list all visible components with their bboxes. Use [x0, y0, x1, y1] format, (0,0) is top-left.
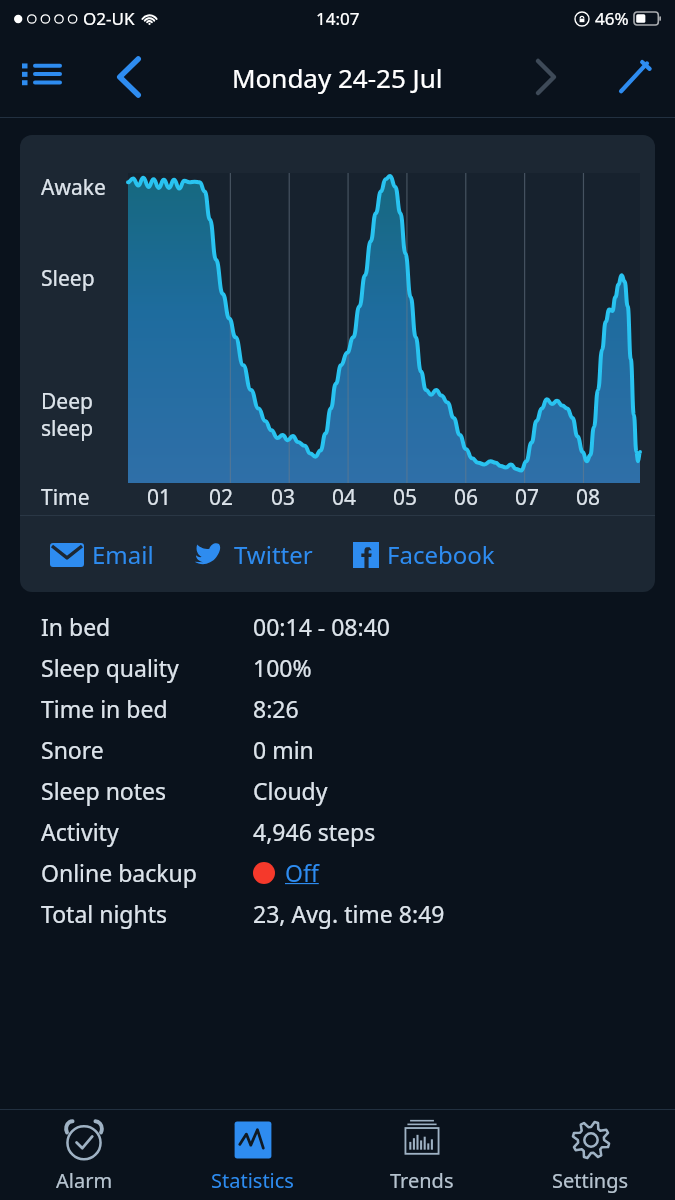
staticText: In bed	[41, 611, 253, 642]
staticText: Trends	[390, 1167, 454, 1194]
button[interactable]: Settings	[506, 1110, 675, 1200]
staticText: Sleep quality	[41, 652, 253, 683]
button[interactable]: Sleep quality	[41, 647, 675, 688]
button[interactable]: List	[8, 44, 74, 110]
staticText: Cloudy	[253, 775, 328, 806]
staticText: Awake	[41, 173, 106, 202]
staticText: 00:14 - 08:40	[253, 611, 390, 642]
staticText: 0 min	[253, 734, 314, 765]
staticText: Twitter	[234, 538, 313, 571]
staticText: 8:26	[253, 693, 299, 724]
button[interactable]: Trends	[337, 1110, 506, 1200]
staticText: Snore	[41, 734, 253, 765]
staticText: 4,946 steps	[253, 816, 376, 847]
staticText: Online backup	[41, 857, 253, 888]
staticText: 07	[515, 483, 540, 512]
staticText: O2-UK	[83, 7, 135, 30]
staticText: Email	[92, 538, 154, 571]
button[interactable]: Statistics	[168, 1110, 337, 1200]
staticText: Activity	[41, 816, 253, 847]
staticText: 06	[454, 483, 479, 512]
staticText: Time	[41, 483, 90, 512]
staticText: 04	[332, 483, 357, 512]
staticText: 05	[393, 483, 418, 512]
button[interactable]: Facebook	[349, 530, 499, 579]
staticText: 14:07	[316, 7, 360, 30]
staticText: Monday 24-25 Jul	[232, 60, 443, 95]
staticText: Sleep	[41, 264, 95, 293]
button[interactable]: Total nights	[41, 893, 675, 934]
staticText: Settings	[552, 1167, 629, 1194]
button[interactable]: Next day	[515, 46, 577, 108]
staticText: 01	[147, 483, 172, 512]
button[interactable]: Email	[46, 530, 158, 579]
button[interactable]: Twitter	[190, 530, 317, 579]
button[interactable]: Edit	[603, 46, 665, 108]
button[interactable]: Online backup	[41, 852, 675, 893]
staticText: 23, Avg. time 8:49	[253, 898, 445, 929]
staticText: 46%	[595, 7, 629, 30]
staticText: Deep sleep	[41, 387, 94, 442]
staticText: Alarm	[56, 1167, 113, 1194]
staticText: Statistics	[211, 1167, 294, 1194]
staticText: Time in bed	[41, 693, 253, 724]
staticText: 100%	[253, 652, 312, 683]
staticText: Total nights	[41, 898, 253, 929]
staticText: 08	[576, 483, 601, 512]
button[interactable]: In bed	[41, 606, 675, 647]
button[interactable]: Sleep notes	[41, 770, 675, 811]
staticText: Sleep notes	[41, 775, 253, 806]
staticText: Facebook	[387, 538, 495, 571]
staticText: Off	[285, 857, 319, 888]
button[interactable]: Previous day	[98, 46, 160, 108]
staticText: 03	[271, 483, 296, 512]
button[interactable]: Alarm	[0, 1110, 168, 1200]
button[interactable]: Time in bed	[41, 688, 675, 729]
button[interactable]: Activity	[41, 811, 675, 852]
staticText: 02	[209, 483, 234, 512]
button[interactable]: Snore	[41, 729, 675, 770]
